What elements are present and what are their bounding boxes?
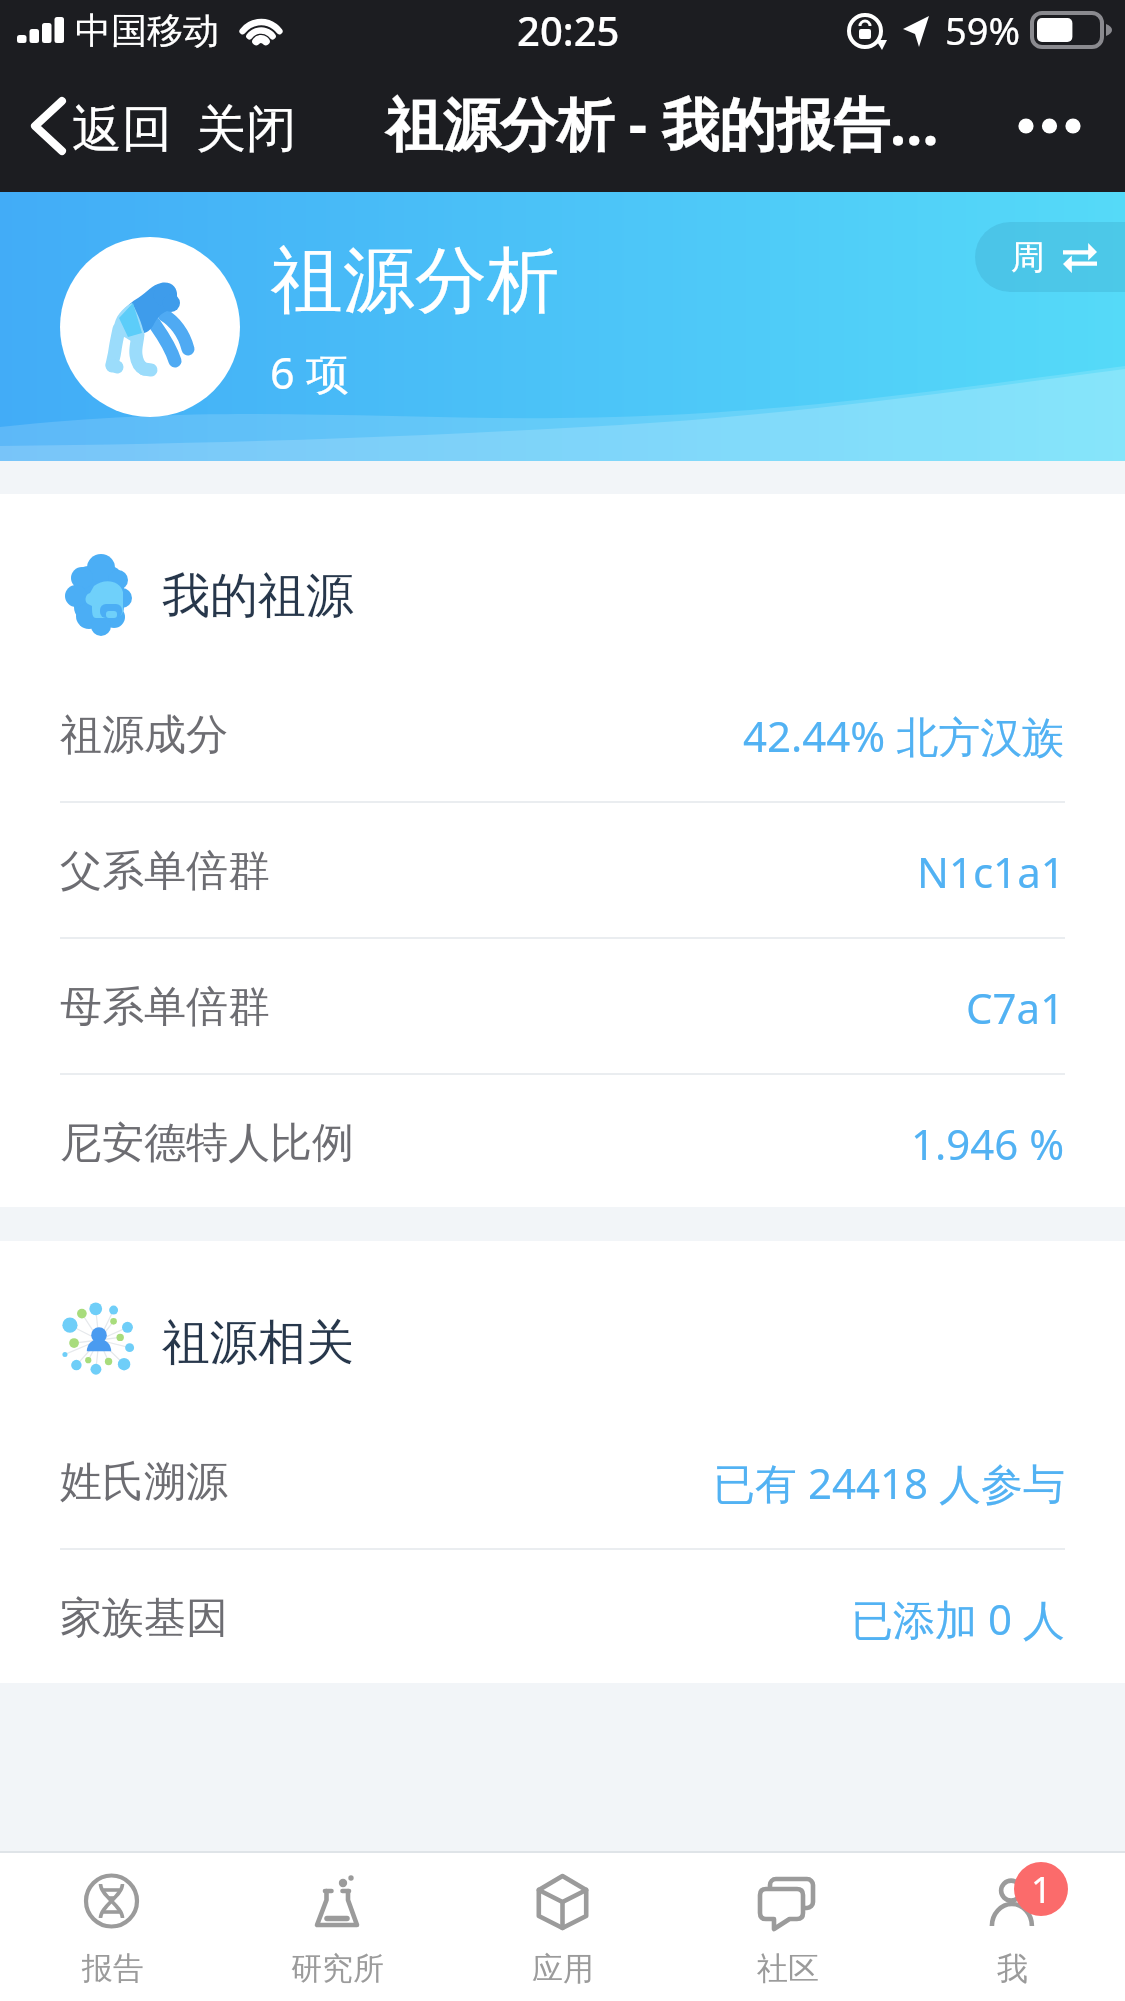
button[interactable]: 返回 xyxy=(24,66,172,192)
staticText: 报告 xyxy=(82,1949,144,1988)
button[interactable]: 应用 xyxy=(450,1851,675,2001)
staticText: 已有 24418 人参与 xyxy=(713,1454,1065,1511)
staticText: 我 xyxy=(997,1949,1028,1988)
staticText: 姓氏溯源 xyxy=(60,1456,228,1509)
button[interactable]: More options xyxy=(1000,66,1100,192)
staticText: 祖源成分 xyxy=(60,709,228,762)
button[interactable]: 研究所 xyxy=(225,1851,450,2001)
button[interactable]: 姓氏溯源 xyxy=(0,1414,1125,1550)
staticText: 应用 xyxy=(532,1949,594,1988)
staticText: 我的祖源 xyxy=(162,566,354,626)
staticText: 社区 xyxy=(757,1949,819,1988)
staticText: 研究所 xyxy=(291,1949,384,1988)
button[interactable]: 社区 xyxy=(675,1851,900,2001)
button[interactable]: 我 xyxy=(900,1851,1125,2001)
staticText: 家族基因 xyxy=(60,1592,228,1645)
staticText: 1 xyxy=(1031,1865,1052,1914)
staticText: 周 xyxy=(1011,236,1045,279)
staticText: 关闭 xyxy=(196,98,296,161)
button[interactable]: 父系单倍群 xyxy=(0,803,1125,939)
button[interactable]: 尼安德特人比例 xyxy=(0,1075,1125,1211)
button[interactable]: 关闭 xyxy=(196,66,296,192)
button[interactable]: 祖源成分 xyxy=(0,667,1125,803)
button[interactable]: 母系单倍群 xyxy=(0,939,1125,1075)
staticText: 母系单倍群 xyxy=(60,981,270,1034)
staticText: 42.44% 北方汉族 xyxy=(743,707,1065,764)
staticText: 20:25 xyxy=(517,3,620,57)
staticText: 中国移动 xyxy=(75,8,219,53)
staticText: C7a1 xyxy=(966,979,1065,1036)
button[interactable]: 报告 xyxy=(0,1851,225,2001)
staticText: 返回 xyxy=(72,98,172,161)
staticText: 已添加 0 人 xyxy=(851,1590,1065,1647)
staticText: 祖源分析 xyxy=(271,236,559,327)
button[interactable]: Ancestry avatar xyxy=(60,237,240,417)
staticText: 祖源相关 xyxy=(162,1313,354,1373)
button[interactable]: 周 xyxy=(975,222,1125,292)
staticText: 祖源分析 - 我的报告… xyxy=(386,84,939,162)
staticText: 59% xyxy=(945,4,1021,56)
staticText: N1c1a1 xyxy=(917,843,1065,900)
button[interactable]: 家族基因 xyxy=(0,1550,1125,1686)
staticText: 6 项 xyxy=(270,343,349,402)
staticText: 父系单倍群 xyxy=(60,845,270,898)
staticText: 尼安德特人比例 xyxy=(60,1117,354,1170)
staticText: 1.946 % xyxy=(911,1115,1065,1172)
